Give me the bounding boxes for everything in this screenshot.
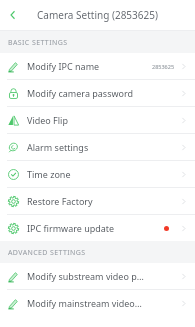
button[interactable]: Restore Factory: [0, 188, 195, 214]
staticText: BASIC SETTINGS: [8, 38, 68, 48]
staticText: ADVANCED SETTINGS: [8, 248, 86, 258]
button[interactable]: Modify IPC name: [0, 53, 195, 79]
staticText: Restore Factory: [27, 195, 179, 207]
staticText: Video Flip: [27, 114, 179, 126]
staticText: 2853625: [152, 63, 175, 70]
staticText: IPC firmware update: [27, 222, 164, 234]
button[interactable]: Back: [3, 5, 23, 25]
button[interactable]: Modify substream video p…: [0, 263, 195, 289]
button[interactable]: IPC firmware update: [0, 215, 195, 241]
staticText: Modify IPC name: [27, 60, 152, 72]
button[interactable]: Time zone: [0, 161, 195, 187]
staticText: Camera Setting (2853625): [37, 8, 158, 22]
staticText: Time zone: [27, 168, 179, 180]
staticText: Modify mainstream video…: [27, 297, 179, 309]
button[interactable]: Video Flip: [0, 107, 195, 133]
staticText: Alarm settings: [27, 141, 179, 153]
staticText: Modify substream video p…: [27, 270, 179, 282]
staticText: Modify camera password: [27, 87, 179, 99]
button[interactable]: Modify mainstream video…: [0, 290, 195, 316]
button[interactable]: Alarm settings: [0, 134, 195, 160]
button[interactable]: Modify camera password: [0, 80, 195, 106]
